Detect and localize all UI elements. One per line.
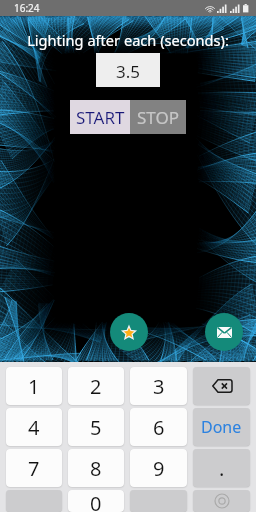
button[interactable]: 6: [130, 408, 187, 446]
button[interactable]: 1: [6, 367, 62, 405]
staticText: Lighting after each (seconds):: [27, 30, 229, 50]
button[interactable]: START: [70, 100, 130, 134]
staticText: 8: [90, 455, 102, 482]
button[interactable]: Backspace: [193, 367, 250, 405]
staticText: 4: [28, 414, 40, 441]
staticText: 3: [153, 373, 165, 400]
staticText: 6: [153, 414, 165, 441]
staticText: 0: [90, 490, 102, 512]
staticText: 1: [28, 373, 40, 400]
button[interactable]: 9: [130, 449, 187, 487]
staticText: STOP: [137, 106, 180, 129]
staticText: 2: [90, 373, 102, 400]
staticText: .: [219, 455, 225, 482]
staticText: Done: [201, 416, 242, 438]
button[interactable]: Done: [193, 408, 250, 446]
button[interactable]: 0: [68, 490, 124, 512]
button[interactable]: Change keyboard: [193, 490, 250, 512]
button[interactable]: 3: [130, 367, 187, 405]
button[interactable]: Favourite: [110, 313, 148, 351]
button[interactable]: 3.5: [96, 53, 160, 87]
button[interactable]: 2: [68, 367, 124, 405]
button[interactable]: 8: [68, 449, 124, 487]
staticText: 5: [90, 414, 102, 441]
button[interactable]: 4: [6, 408, 62, 446]
button[interactable]: 7: [6, 449, 62, 487]
staticText: START: [76, 106, 125, 129]
button[interactable]: Mail: [205, 313, 243, 351]
staticText: 16:24: [14, 1, 40, 15]
staticText: 3.5: [116, 60, 141, 83]
button[interactable]: 5: [68, 408, 124, 446]
button[interactable]: STOP: [130, 100, 186, 134]
staticText: 9: [153, 455, 165, 482]
staticText: 7: [28, 455, 40, 482]
button[interactable]: .: [193, 449, 250, 487]
